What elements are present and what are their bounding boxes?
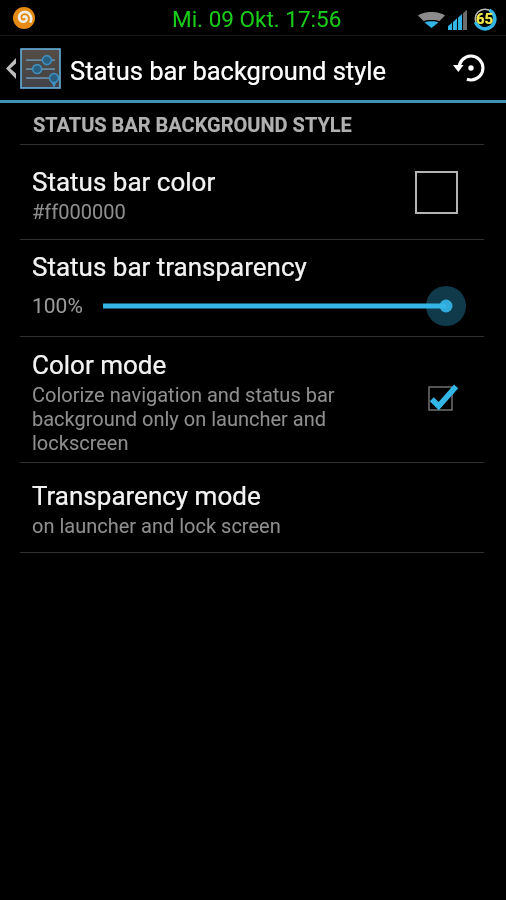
staticText: 65 bbox=[476, 10, 494, 28]
button[interactable]: Status bar transparency bbox=[0, 240, 506, 336]
staticText: on launcher and lock screen bbox=[32, 514, 281, 538]
staticText: Colorize navigation and status bar backg… bbox=[32, 383, 392, 455]
staticText: STATUS BAR BACKGROUND STYLE bbox=[33, 113, 352, 136]
staticText: Status bar background style bbox=[70, 56, 386, 86]
button[interactable]: Color mode bbox=[0, 337, 506, 462]
staticText: Status bar color bbox=[32, 167, 216, 197]
staticText: Transparency mode bbox=[32, 481, 261, 511]
button[interactable]: Reset to default bbox=[436, 36, 506, 100]
staticText: Status bar transparency bbox=[32, 252, 307, 282]
staticText: Color mode bbox=[32, 350, 167, 380]
staticText: 100% bbox=[32, 294, 83, 319]
button[interactable]: Status bar color bbox=[0, 145, 506, 239]
staticText: #ff000000 bbox=[32, 200, 126, 224]
button[interactable]: Transparency mode bbox=[0, 463, 506, 552]
staticText: Mi. 09 Okt. 17:56 bbox=[172, 6, 342, 32]
button[interactable]: Navigate up bbox=[0, 36, 386, 100]
